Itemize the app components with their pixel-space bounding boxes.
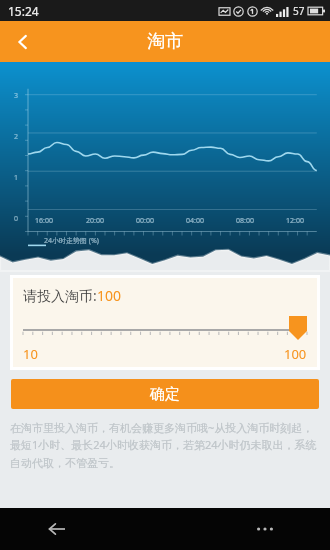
staticText: 20:00 [86,216,104,226]
staticText: 24小时走势图 (%) [44,236,99,246]
staticText: 16:00 [35,216,53,226]
staticText: 0 [14,214,19,224]
staticText: 15:24 [8,3,39,19]
staticText: 100 [97,286,122,305]
staticText: 2 [14,132,19,142]
staticText: 10 [23,345,38,363]
button[interactable]: Menu [248,512,282,546]
button[interactable]: Back [40,512,74,546]
staticText: 12:00 [286,216,304,226]
staticText: 1 [14,173,19,183]
button[interactable]: Slider thumb [289,316,307,340]
staticText: 08:00 [236,216,254,226]
staticText: 请投入淘币: [23,286,97,305]
staticText: 04:00 [186,216,204,226]
staticText: 在淘市里投入淘币，有机会赚更多淘币哦~从投入淘币时刻起，最短1小时、最长24小时… [10,420,320,470]
button[interactable]: Back [0,21,46,62]
staticText: 00:00 [136,216,154,226]
button[interactable]: 确定 [11,379,319,409]
staticText: 57 [293,4,305,18]
staticText: 确定 [150,385,180,404]
staticText: 100 [284,345,307,363]
staticText: 3 [14,91,19,101]
staticText: 淘市 [147,30,183,53]
